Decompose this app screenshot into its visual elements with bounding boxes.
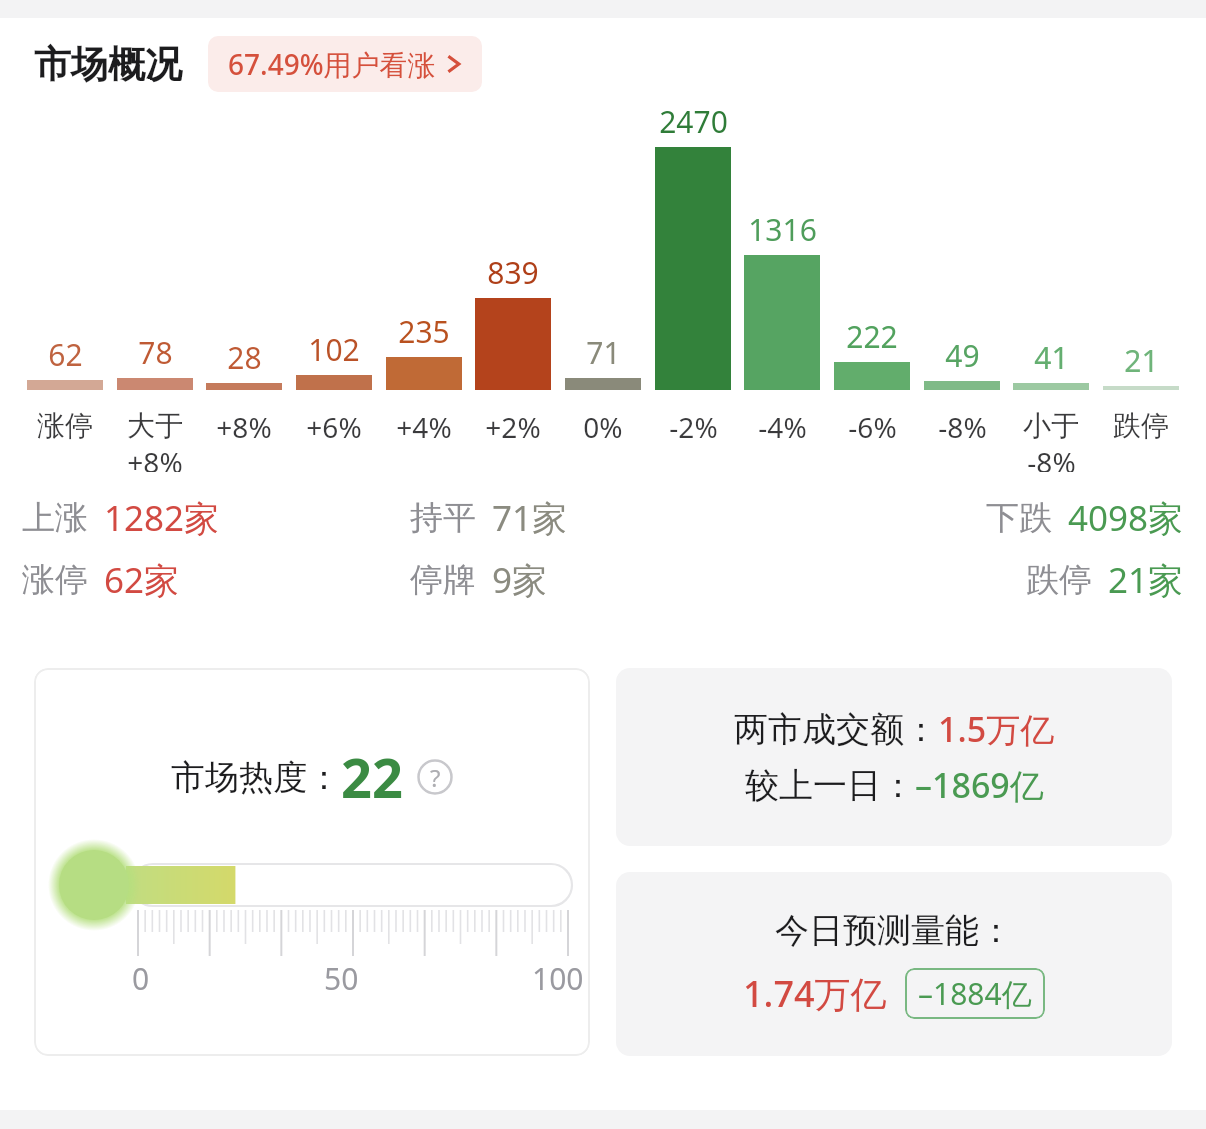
staticText: 2470: [659, 101, 728, 142]
staticText: 1.74万亿: [743, 969, 887, 1018]
staticText: 涨停: [37, 408, 93, 443]
staticText: 4098家: [1068, 494, 1184, 542]
staticText: -6%: [848, 408, 897, 446]
staticText: 持平: [410, 497, 476, 539]
staticText: 71: [586, 332, 621, 373]
staticText: 839: [487, 252, 539, 293]
staticText: 49: [945, 335, 980, 376]
staticText: 62家: [104, 556, 180, 604]
staticText: 62: [48, 334, 83, 375]
staticText: 67.49%用户看涨: [228, 45, 436, 83]
staticText: 上涨: [22, 497, 88, 539]
staticText: 市场概况: [34, 41, 182, 88]
staticText: 1282家: [104, 494, 220, 542]
staticText: -4%: [758, 408, 807, 446]
staticText: 小于: [1023, 408, 1079, 443]
staticText: +6%: [306, 408, 362, 446]
staticText: 0: [132, 958, 150, 999]
staticText: -8%: [938, 408, 987, 446]
staticText: 下跌: [986, 497, 1052, 539]
staticText: 50: [324, 958, 359, 999]
staticText: +4%: [396, 408, 452, 446]
staticText: 停牌: [410, 559, 476, 601]
staticText: 两市成交额：: [734, 708, 938, 751]
staticText: 41: [1034, 337, 1069, 378]
staticText: 较上一日：: [745, 764, 915, 807]
staticText: +8%: [216, 408, 272, 446]
staticText: 0%: [583, 408, 623, 446]
staticText: -8%: [1027, 443, 1076, 472]
staticText: 市场热度：: [171, 756, 341, 799]
button[interactable]: 67.49%用户看涨: [208, 36, 482, 92]
staticText: +8%: [127, 443, 183, 472]
staticText: 跌停: [1026, 559, 1092, 601]
staticText: –1884亿: [918, 973, 1032, 1014]
button[interactable]: 今日预测量能：: [616, 872, 1172, 1056]
staticText: 22: [341, 740, 403, 814]
button[interactable]: 说明: [417, 759, 453, 795]
staticText: 222: [846, 316, 898, 357]
staticText: -2%: [669, 408, 718, 446]
button[interactable]: 两市成交额：: [616, 668, 1172, 846]
staticText: 235: [398, 311, 450, 352]
staticText: 78: [138, 332, 173, 373]
staticText: 21家: [1108, 556, 1184, 604]
staticText: 28: [227, 337, 262, 378]
staticText: 100: [532, 958, 584, 999]
staticText: 9家: [492, 556, 548, 604]
staticText: +2%: [485, 408, 541, 446]
staticText: 1.5万亿: [938, 706, 1055, 752]
staticText: 涨停: [22, 559, 88, 601]
staticText: 跌停: [1113, 408, 1169, 443]
staticText: 21: [1124, 340, 1159, 381]
staticText: 大于: [127, 408, 183, 443]
staticText: 71家: [492, 494, 568, 542]
staticText: ?: [430, 761, 441, 794]
staticText: 今日预测量能：: [775, 909, 1013, 952]
staticText: 102: [308, 329, 360, 370]
staticText: –1869亿: [915, 762, 1044, 808]
button[interactable]: 市场热度：: [34, 668, 590, 1056]
staticText: 1316: [748, 209, 817, 250]
